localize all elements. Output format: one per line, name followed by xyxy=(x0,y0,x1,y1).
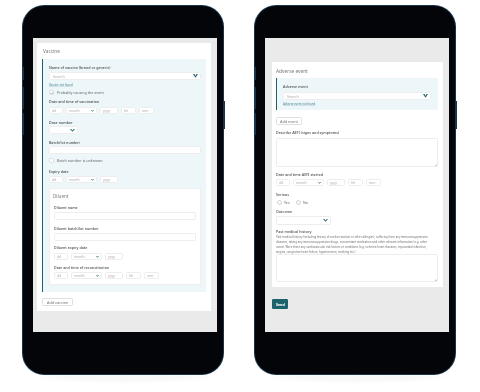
button[interactable]: month xyxy=(71,253,102,260)
button[interactable] xyxy=(54,233,196,241)
button[interactable]: mm xyxy=(144,272,159,279)
staticText: mm xyxy=(142,108,149,113)
staticText: yyyy xyxy=(330,180,337,185)
staticText: Diluent xyxy=(53,193,69,199)
button[interactable]: mm xyxy=(366,179,381,186)
button[interactable] xyxy=(276,138,438,167)
staticText: Describe AEFI (signs and symptoms) xyxy=(276,130,340,135)
staticText: yyyy xyxy=(108,254,115,259)
staticText: Vaccine xyxy=(43,48,60,55)
staticText: dd xyxy=(57,273,62,278)
button[interactable]: yyyy xyxy=(100,107,118,114)
button[interactable]: Vaccine not found xyxy=(49,83,73,87)
staticText: month xyxy=(74,273,85,278)
staticText: Send xyxy=(276,302,285,307)
staticText: yyyy xyxy=(103,108,110,113)
button[interactable] xyxy=(276,216,331,225)
staticText: Past medical history (including history … xyxy=(276,235,436,254)
staticText: month xyxy=(74,254,85,259)
button[interactable]: Yes xyxy=(277,200,290,205)
staticText: Name of vaccine (brand or generic) xyxy=(49,65,111,70)
staticText: hh xyxy=(124,108,129,113)
staticText: Date and time of vaccination xyxy=(49,99,100,104)
staticText: dd xyxy=(57,254,62,259)
button[interactable]: month xyxy=(66,107,97,114)
staticText: Add event xyxy=(280,119,298,124)
button[interactable]: Search xyxy=(283,92,431,100)
staticText: dd xyxy=(52,177,57,182)
button[interactable]: Send xyxy=(272,299,288,309)
staticText: Date and time AEFI started xyxy=(276,172,324,177)
staticText: Batch number is unknown xyxy=(57,158,103,163)
staticText: Add vaccine xyxy=(47,300,69,305)
staticText: Expiry date xyxy=(49,169,69,174)
staticText: Past medical history xyxy=(276,229,312,234)
staticText: hh xyxy=(351,180,356,185)
button[interactable]: Search xyxy=(49,72,201,80)
staticText: Date and time of reconstitution xyxy=(54,265,110,270)
staticText: yyyy xyxy=(108,273,115,278)
button[interactable]: dd xyxy=(54,253,68,260)
button[interactable]: yyyy xyxy=(105,253,123,260)
staticText: Diluent name xyxy=(54,205,78,210)
button[interactable]: yyyy xyxy=(327,179,345,186)
button[interactable]: mm xyxy=(139,107,154,114)
staticText: Adverse event xyxy=(283,84,308,89)
staticText: month xyxy=(296,180,307,185)
staticText: Search xyxy=(53,74,65,79)
staticText: yyyy xyxy=(103,177,110,182)
button[interactable] xyxy=(276,254,438,282)
staticText: Serious xyxy=(276,192,289,197)
staticText: Yes xyxy=(284,200,290,205)
button[interactable]: month xyxy=(293,179,324,186)
staticText: month xyxy=(69,177,80,182)
button[interactable] xyxy=(49,146,201,154)
staticText: Batch/lot number xyxy=(49,140,81,145)
staticText: dd xyxy=(279,180,284,185)
button[interactable]: dd xyxy=(54,272,68,279)
button[interactable]: hh xyxy=(126,272,141,279)
staticText: hh xyxy=(129,273,134,278)
button[interactable]: month xyxy=(66,176,97,183)
button[interactable]: Add vaccine xyxy=(42,298,73,306)
button[interactable]: Add event xyxy=(276,117,302,125)
staticText: Probably causing the event xyxy=(57,90,104,95)
staticText: mm xyxy=(147,273,154,278)
button[interactable]: hh xyxy=(121,107,136,114)
button[interactable]: Adverse event not found xyxy=(283,102,316,106)
button[interactable] xyxy=(49,126,78,134)
button[interactable]: Batch number is unknown xyxy=(49,158,103,163)
staticText: Adverse event xyxy=(276,68,308,75)
staticText: Dose number xyxy=(49,120,73,125)
staticText: No xyxy=(303,200,308,205)
staticText: Diluent expiry date xyxy=(54,245,88,250)
staticText: Diluent batch/lot number xyxy=(54,226,99,231)
staticText: month xyxy=(69,108,80,113)
staticText: mm xyxy=(369,180,376,185)
staticText: Search xyxy=(287,94,299,99)
button[interactable]: yyyy xyxy=(100,176,118,183)
button[interactable] xyxy=(54,212,196,220)
button[interactable]: dd xyxy=(49,176,63,183)
button[interactable]: Probably causing the event xyxy=(49,90,104,95)
button[interactable]: No xyxy=(296,200,308,205)
button[interactable]: hh xyxy=(348,179,363,186)
staticText: Outcome xyxy=(276,209,293,214)
button[interactable]: yyyy xyxy=(105,272,123,279)
button[interactable]: month xyxy=(71,272,102,279)
button[interactable]: dd xyxy=(49,107,63,114)
staticText: dd xyxy=(52,108,57,113)
button[interactable]: dd xyxy=(276,179,290,186)
